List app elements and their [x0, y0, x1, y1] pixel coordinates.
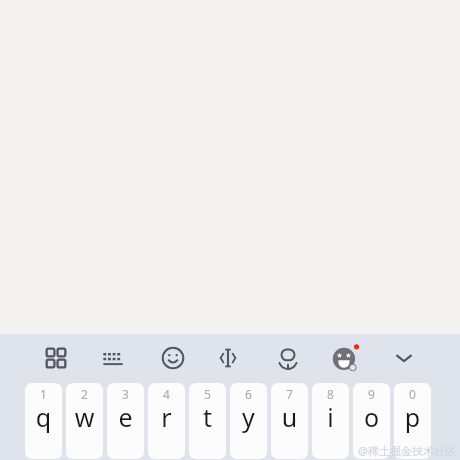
button[interactable]: 2	[66, 383, 103, 459]
staticText: 1	[25, 386, 62, 402]
button[interactable]: Keyboard	[92, 337, 134, 379]
button[interactable]: 7	[271, 383, 308, 459]
button[interactable]: Apps	[35, 337, 77, 379]
button[interactable]: 8	[312, 383, 349, 459]
staticText: t	[189, 400, 226, 434]
staticText: 0	[394, 386, 431, 402]
button[interactable]: 0	[394, 383, 431, 459]
staticText: 6	[230, 386, 267, 402]
button[interactable]: Voice input	[267, 337, 309, 379]
staticText: r	[148, 400, 185, 434]
button[interactable]: Stickers	[324, 337, 366, 379]
button[interactable]: 5	[189, 383, 226, 459]
staticText: o	[353, 400, 390, 434]
staticText: y	[230, 400, 267, 434]
staticText: 2	[66, 386, 103, 402]
staticText: 9	[353, 386, 390, 402]
button[interactable]: Text cursor	[207, 337, 249, 379]
staticText: 7	[271, 386, 308, 402]
staticText: @稀土掘金技术社区	[358, 443, 456, 458]
button[interactable]: Emoticons	[152, 337, 194, 379]
staticText: w	[66, 400, 103, 434]
button[interactable]: Collapse keyboard	[383, 337, 425, 379]
staticText: 8	[312, 386, 349, 402]
button[interactable]: 1	[25, 383, 62, 459]
button[interactable]: 3	[107, 383, 144, 459]
staticText: 5	[189, 386, 226, 402]
button[interactable]: 4	[148, 383, 185, 459]
staticText: p	[394, 400, 431, 434]
staticText: q	[25, 400, 62, 434]
staticText: 3	[107, 386, 144, 402]
staticText: u	[271, 400, 308, 434]
staticText: 4	[148, 386, 185, 402]
button[interactable]: 6	[230, 383, 267, 459]
staticText: i	[312, 400, 349, 434]
button[interactable]: 9	[353, 383, 390, 459]
staticText: e	[107, 400, 144, 434]
